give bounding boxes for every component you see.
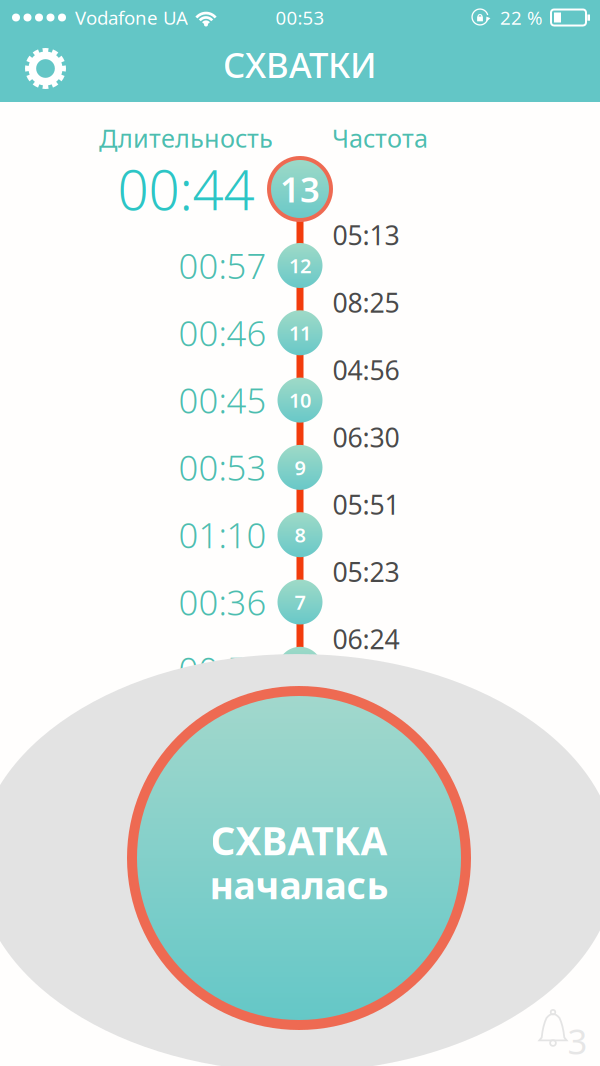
staticText: началась (209, 860, 388, 909)
staticText: Длительность (99, 121, 273, 155)
staticText: 05:23 (332, 554, 399, 589)
button[interactable]: Settings (0, 35, 91, 102)
staticText: 00:53 (178, 444, 266, 490)
staticText: 13 (280, 166, 320, 212)
staticText: 07:02 (332, 689, 399, 724)
staticText: 08:25 (332, 285, 399, 320)
staticText: 05:51 (332, 487, 399, 522)
staticText: 00:52 (178, 646, 266, 692)
staticText: 9 (294, 454, 305, 481)
staticText: 00:36 (178, 579, 266, 625)
staticText: Vodafone UA (75, 5, 188, 30)
staticText: 7 (294, 589, 305, 615)
staticText: 05:13 (332, 217, 399, 253)
staticText: 00:53 (275, 5, 324, 30)
staticText: 04:56 (332, 352, 399, 387)
staticText: СХВАТКИ (223, 41, 377, 87)
staticText: 12 (289, 252, 311, 279)
staticText: 8 (294, 521, 305, 548)
staticText: 00:46 (178, 310, 266, 356)
staticText: 10 (289, 387, 311, 413)
staticText: СХВАТКА (210, 814, 387, 866)
staticText: 01:10 (178, 512, 266, 558)
staticText: 00:57 (178, 242, 266, 288)
staticText: 00:44 (117, 153, 254, 225)
staticText: Частота (332, 121, 428, 155)
staticText: 06:30 (332, 419, 399, 455)
staticText: 3 (567, 1018, 587, 1064)
staticText: 06:24 (332, 621, 399, 657)
button[interactable]: СХВАТКА (127, 686, 471, 1030)
staticText: 11 (289, 319, 311, 346)
staticText: 22 % (500, 5, 543, 30)
staticText: 00:45 (178, 377, 266, 423)
